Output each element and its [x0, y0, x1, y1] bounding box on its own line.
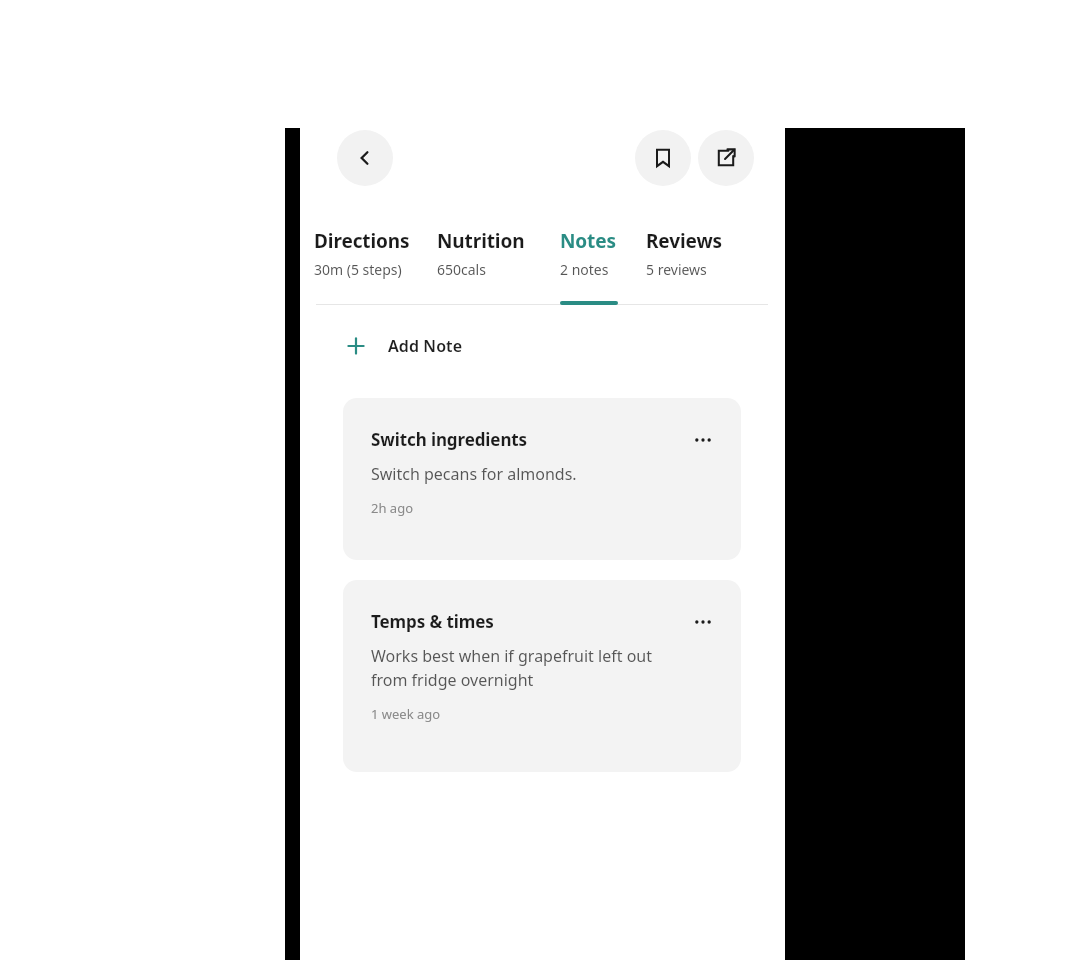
button[interactable]: More options [681, 600, 725, 644]
staticText: 5 reviews [646, 260, 707, 279]
staticText: Temps & times [371, 610, 494, 633]
staticText: 2 notes [560, 260, 609, 279]
staticText: 1 week ago [371, 705, 441, 723]
staticText: Add Note [388, 335, 463, 357]
button[interactable]: Notes [560, 228, 620, 279]
button[interactable]: Directions [314, 228, 414, 279]
staticText: Works best when if grapefruit left out f… [371, 645, 681, 691]
staticText: 2h ago [371, 499, 414, 517]
button[interactable]: Nutrition [437, 228, 529, 279]
staticText: 650cals [437, 260, 486, 279]
button[interactable]: Back [337, 130, 393, 186]
staticText: Directions [314, 228, 410, 254]
staticText: Reviews [646, 228, 723, 254]
button[interactable]: More options [343, 580, 741, 772]
button[interactable]: Reviews [646, 228, 727, 279]
button[interactable]: More options [343, 398, 741, 560]
staticText: Switch pecans for almonds. [371, 463, 577, 485]
staticText: 30m (5 steps) [314, 260, 402, 279]
button[interactable]: Save recipe [635, 130, 691, 186]
button[interactable]: More options [681, 418, 725, 462]
staticText: Nutrition [437, 228, 525, 254]
staticText: Switch ingredients [371, 428, 528, 451]
button[interactable]: Add Note [316, 324, 463, 368]
button[interactable]: Share [698, 130, 754, 186]
staticText: Notes [560, 228, 616, 254]
